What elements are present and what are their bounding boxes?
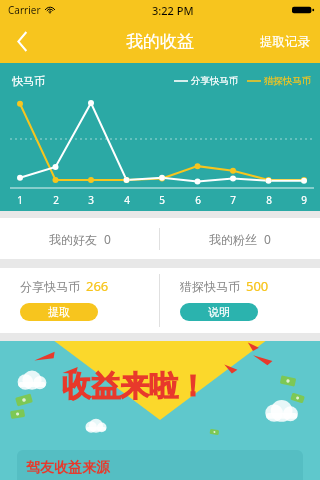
staticText: 说明 bbox=[208, 305, 230, 319]
staticText: 500 bbox=[246, 277, 269, 295]
button[interactable]: 我的粉丝 bbox=[160, 218, 320, 259]
staticText: 9 bbox=[301, 193, 307, 207]
staticText: 我的粉丝 bbox=[209, 232, 257, 247]
staticText: 1 bbox=[17, 193, 23, 207]
staticText: 驾友收益来源 bbox=[26, 459, 110, 477]
staticText: 3:22 PM bbox=[152, 3, 194, 18]
staticText: 8 bbox=[266, 193, 272, 207]
button[interactable]: 说明 bbox=[180, 303, 258, 321]
button[interactable]: 我的好友 bbox=[0, 218, 159, 259]
staticText: 0 bbox=[104, 231, 111, 247]
staticText: Carrier bbox=[8, 3, 41, 17]
staticText: 2 bbox=[53, 193, 59, 207]
staticText: 快马币 bbox=[12, 74, 45, 88]
staticText: 猎探快马币 bbox=[180, 279, 240, 294]
staticText: 266 bbox=[86, 277, 109, 295]
staticText: 3 bbox=[88, 193, 94, 207]
button[interactable]: 提取 bbox=[20, 303, 98, 321]
staticText: 7 bbox=[230, 193, 236, 207]
staticText: 5 bbox=[159, 193, 165, 207]
staticText: 我的收益 bbox=[126, 31, 194, 52]
button[interactable]: 收益来啦！ bbox=[0, 341, 320, 480]
staticText: 6 bbox=[195, 193, 201, 207]
staticText: 收益来啦！ bbox=[62, 368, 207, 405]
button[interactable]: 提取记录 bbox=[250, 20, 320, 63]
staticText: 0 bbox=[264, 231, 271, 247]
staticText: 4 bbox=[124, 193, 130, 207]
staticText: 我的好友 bbox=[49, 232, 97, 247]
staticText: 提取 bbox=[48, 305, 70, 319]
button[interactable]: Back bbox=[0, 20, 44, 63]
staticText: 猎探快马币 bbox=[264, 75, 312, 87]
staticText: 分享快马币 bbox=[20, 279, 80, 294]
staticText: 提取记录 bbox=[260, 34, 310, 50]
staticText: 分享快马币 bbox=[191, 75, 239, 87]
